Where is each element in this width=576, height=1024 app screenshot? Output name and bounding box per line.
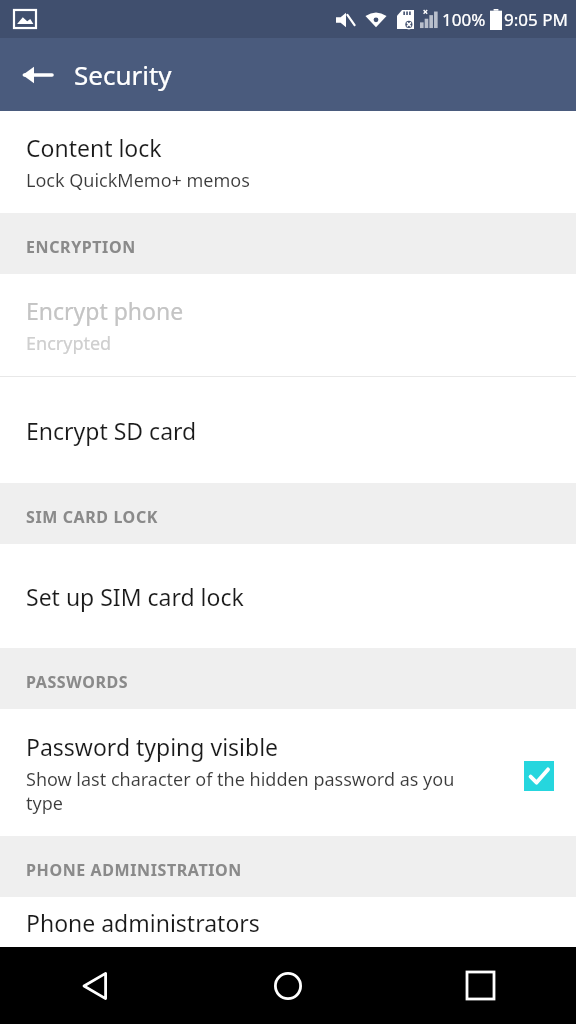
staticText: PHONE ADMINISTRATION xyxy=(26,859,242,881)
staticText: Encrypt phone xyxy=(26,295,184,326)
button[interactable]: Back xyxy=(0,947,192,1024)
staticText: Phone administrators xyxy=(26,907,260,938)
button[interactable]: Home xyxy=(192,947,384,1024)
staticText: 100% xyxy=(442,8,486,31)
button[interactable]: Password typing visible checkbox xyxy=(524,761,554,791)
button[interactable]: Set up SIM card lock xyxy=(0,544,576,648)
staticText: PASSWORDS xyxy=(26,671,129,693)
button[interactable]: Recent apps xyxy=(384,947,576,1024)
staticText: Lock QuickMemo+ memos xyxy=(26,168,250,193)
button[interactable]: Phone administrators xyxy=(0,897,576,947)
button[interactable]: Content lock xyxy=(0,111,576,213)
staticText: SIM CARD LOCK xyxy=(26,506,158,528)
button[interactable]: Back xyxy=(9,47,65,103)
staticText: Show last character of the hidden passwo… xyxy=(26,767,486,815)
staticText: Encrypted xyxy=(26,331,112,356)
staticText: ENCRYPTION xyxy=(26,236,136,258)
button[interactable]: Encrypt phone xyxy=(0,274,576,376)
staticText: Set up SIM card lock xyxy=(26,581,244,612)
staticText: Encrypt SD card xyxy=(26,415,197,446)
staticText: 9:05 PM xyxy=(504,8,568,31)
staticText: Security xyxy=(74,57,172,92)
staticText: Password typing visible xyxy=(26,731,279,762)
staticText: Content lock xyxy=(26,132,162,163)
button[interactable]: Password typing visible xyxy=(0,709,576,836)
button[interactable]: Encrypt SD card xyxy=(0,377,576,483)
